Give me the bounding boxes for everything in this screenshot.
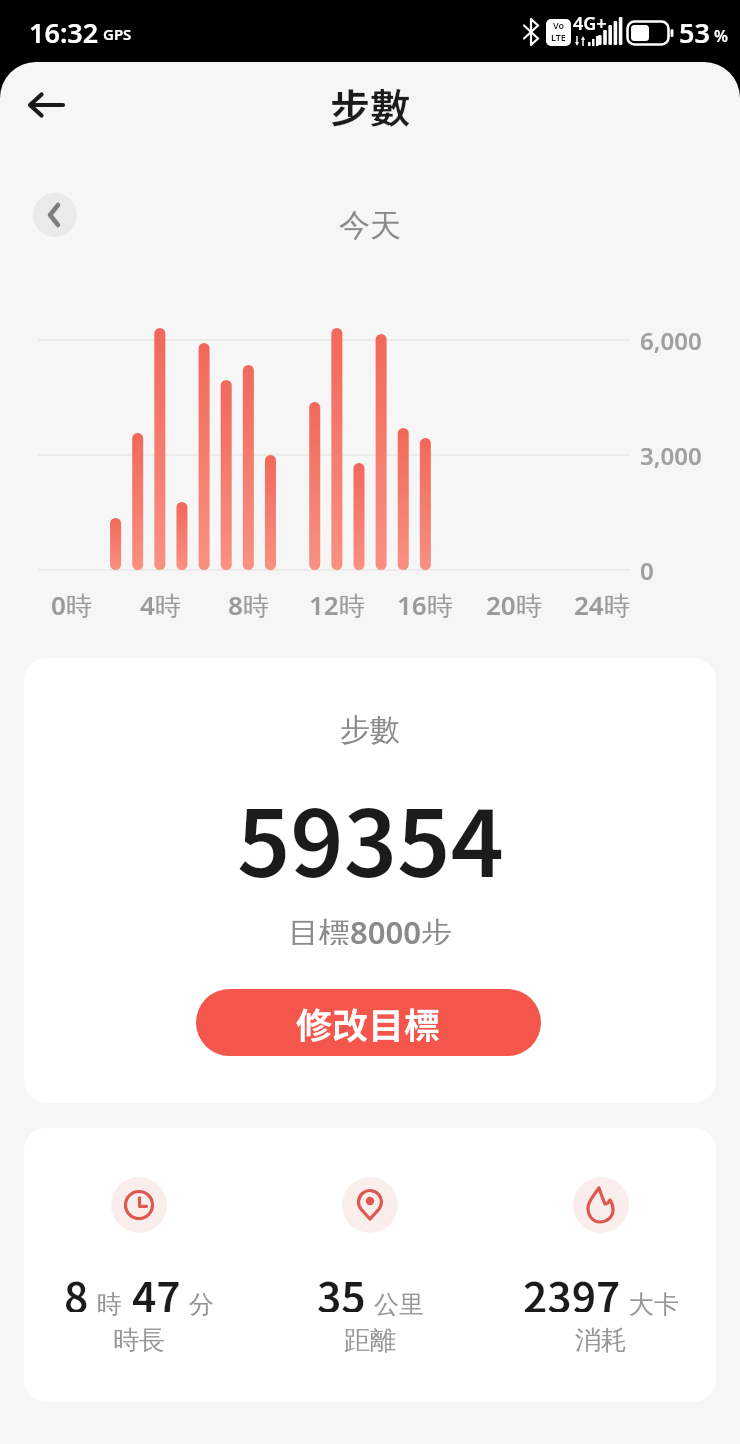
staticText: LTE [551, 31, 566, 43]
staticText: 大卡 [629, 1289, 679, 1320]
staticText: 59354 [237, 770, 504, 900]
staticText: 0 [640, 554, 654, 587]
staticText: 53 [679, 14, 710, 51]
staticText: 時 [97, 1289, 122, 1320]
staticText: 消耗 [575, 1324, 627, 1356]
staticText: 24時 [574, 587, 630, 623]
staticText: 距離 [344, 1324, 396, 1356]
staticText: 分 [189, 1289, 214, 1320]
staticText: 8時 [228, 587, 269, 623]
staticText: 步數 [330, 77, 410, 135]
staticText: 20時 [486, 587, 542, 623]
button[interactable]: 修改目標 [196, 989, 541, 1056]
staticText: 3,000 [640, 439, 702, 472]
staticText: 4G+ [573, 11, 607, 36]
staticText: 4時 [140, 587, 181, 623]
staticText: 16:32 [29, 14, 99, 51]
staticText: 時長 [113, 1324, 165, 1356]
staticText: 16時 [397, 587, 453, 623]
staticText: 2397 [523, 1264, 621, 1312]
staticText: 步數 [340, 711, 400, 745]
staticText: GPS [103, 24, 132, 44]
button[interactable] [20, 80, 72, 132]
staticText: 修改目標 [296, 997, 441, 1049]
staticText: 0時 [51, 587, 92, 623]
staticText: 12時 [309, 587, 365, 623]
staticText: % [714, 25, 729, 47]
staticText: 今天 [339, 206, 401, 242]
staticText: 47 [132, 1264, 181, 1312]
button[interactable] [33, 193, 77, 237]
staticText: 公里 [374, 1289, 424, 1320]
staticText: Vo [553, 19, 565, 31]
staticText: 目標8000步 [288, 911, 452, 945]
staticText: 8 [64, 1264, 89, 1312]
staticText: 35 [317, 1264, 366, 1312]
staticText: 6,000 [640, 324, 702, 357]
